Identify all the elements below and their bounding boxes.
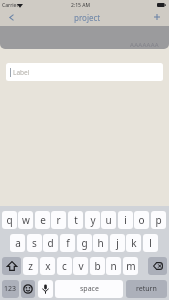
staticText: c <box>62 259 67 273</box>
button[interactable]: Back <box>2 11 18 23</box>
button[interactable]: l <box>143 234 158 252</box>
button[interactable]: u <box>101 211 116 229</box>
button[interactable]: m <box>123 257 138 275</box>
button[interactable]: g <box>77 234 92 252</box>
staticText: u <box>105 213 112 227</box>
staticText: y <box>90 213 96 227</box>
button[interactable]: space <box>55 280 123 298</box>
button[interactable]: r <box>51 211 66 229</box>
staticText: p <box>155 213 162 227</box>
button[interactable]: q <box>2 211 17 229</box>
button[interactable]: Emoji <box>21 280 35 298</box>
button[interactable]: Backspace <box>148 257 167 275</box>
staticText: v <box>78 259 84 273</box>
button[interactable]: w <box>18 211 33 229</box>
button[interactable]: Label <box>6 63 163 81</box>
button[interactable]: c <box>57 257 72 275</box>
button[interactable]: z <box>23 257 38 275</box>
staticText: s <box>32 236 37 250</box>
staticText: b <box>94 259 101 273</box>
staticText: j <box>116 236 119 250</box>
staticText: Carrier <box>2 2 19 9</box>
button[interactable]: y <box>85 211 100 229</box>
staticText: 123 <box>4 284 17 294</box>
staticText: x <box>45 259 51 273</box>
staticText: i <box>124 213 127 227</box>
staticText: a <box>15 236 21 250</box>
button[interactable]: f <box>60 234 75 252</box>
button[interactable]: return <box>126 280 167 298</box>
staticText: o <box>138 213 145 227</box>
button[interactable]: Add <box>149 11 164 23</box>
button[interactable]: p <box>151 211 166 229</box>
button[interactable]: 123 <box>2 280 19 298</box>
button[interactable]: d <box>43 234 58 252</box>
button[interactable]: a <box>10 234 25 252</box>
staticText: e <box>40 213 46 227</box>
button[interactable]: Dictate <box>38 280 53 298</box>
staticText: g <box>81 236 88 250</box>
staticText: return <box>136 284 157 294</box>
staticText: t <box>74 213 78 227</box>
staticText: d <box>47 236 54 250</box>
staticText: k <box>131 236 137 250</box>
button[interactable]: v <box>73 257 88 275</box>
staticText: project <box>74 12 101 23</box>
button[interactable]: s <box>27 234 42 252</box>
button[interactable]: j <box>110 234 125 252</box>
staticText: Label <box>13 68 30 77</box>
button[interactable]: x <box>40 257 55 275</box>
staticText: m <box>126 259 136 273</box>
staticText: h <box>97 236 104 250</box>
button[interactable]: b <box>90 257 105 275</box>
staticText: z <box>28 259 33 273</box>
staticText: q <box>6 213 13 227</box>
button[interactable]: k <box>126 234 141 252</box>
staticText: r <box>56 213 61 227</box>
staticText: f <box>66 236 70 250</box>
button[interactable]: i <box>118 211 133 229</box>
staticText: AAAAAAA <box>130 41 159 49</box>
staticText: w <box>22 213 30 227</box>
button[interactable]: n <box>106 257 121 275</box>
button[interactable]: Shift <box>2 257 21 275</box>
button[interactable]: h <box>93 234 108 252</box>
button[interactable]: e <box>35 211 50 229</box>
staticText: space <box>80 284 99 294</box>
staticText: l <box>149 236 152 250</box>
staticText: n <box>110 259 117 273</box>
button[interactable]: t <box>68 211 83 229</box>
button[interactable]: o <box>134 211 149 229</box>
staticText: 2:15 AM <box>71 2 91 9</box>
